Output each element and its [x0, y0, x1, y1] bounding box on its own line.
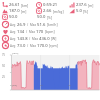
- staticText: 50: [2, 64, 5, 68]
- button[interactable]: Cadence average and maximum: [0, 42, 100, 49]
- staticText: [m]: [88, 3, 94, 8]
- staticText: 237.6: [76, 2, 87, 8]
- button[interactable]: Slope: [69, 8, 100, 14]
- staticText: Max: [30, 44, 36, 48]
- staticText: [%]: [83, 9, 89, 14]
- button[interactable]: Power average and maximum: [0, 35, 100, 42]
- staticText: 50.0: [37, 14, 46, 20]
- staticText: 143.8: [17, 36, 28, 42]
- staticText: 51.6: [37, 22, 46, 28]
- button[interactable]: Heart rate average and maximum: [0, 28, 100, 35]
- button[interactable]: Elevation: [2, 8, 36, 14]
- staticText: /: [27, 23, 29, 27]
- staticText: Avg: [10, 44, 16, 48]
- staticText: [rpm]: [12, 51, 19, 54]
- button[interactable]: Ascent: [69, 2, 100, 8]
- staticText: /: [26, 30, 28, 34]
- staticText: 26.61: [9, 2, 20, 8]
- staticText: 26.9: [17, 22, 26, 28]
- staticText: /: [27, 44, 29, 48]
- staticText: Avg: [10, 23, 16, 27]
- button[interactable]: Duration: [36, 2, 69, 8]
- button[interactable]: Cadence chart: [0, 50, 100, 100]
- staticText: [rpm]: [49, 43, 58, 48]
- staticText: 2.66: [43, 8, 52, 14]
- staticText: 436.0: [39, 36, 50, 42]
- staticText: 170: [36, 29, 44, 35]
- staticText: 134: [17, 29, 25, 35]
- staticText: Avg: [10, 37, 16, 41]
- staticText: [W]: [51, 36, 57, 41]
- staticText: 170.0: [37, 43, 48, 49]
- button[interactable]: Left balance: [2, 14, 36, 20]
- staticText: /: [29, 37, 31, 41]
- staticText: 73.0: [17, 43, 26, 49]
- staticText: 50.0: [9, 14, 18, 20]
- staticText: [km]: [21, 3, 29, 8]
- staticText: 75: [2, 53, 5, 57]
- staticText: 5.0: [76, 8, 82, 14]
- staticText: [bpm]: [45, 29, 55, 34]
- staticText: Max: [32, 37, 38, 41]
- staticText: 0 [km]: [10, 83, 18, 86]
- staticText: [m/kg]: [53, 9, 64, 14]
- button[interactable]: Speed average and maximum: [0, 21, 100, 28]
- button[interactable]: Ratio: [36, 8, 69, 14]
- staticText: 25: [2, 75, 5, 79]
- staticText: 40: [68, 83, 71, 86]
- staticText: [km/h]: [47, 22, 58, 27]
- button[interactable]: Distance: [2, 2, 36, 8]
- button[interactable]: Right balance: [36, 14, 100, 20]
- staticText: [m]: [21, 9, 27, 14]
- staticText: [%]: [47, 15, 53, 20]
- staticText: Avg: [10, 30, 16, 34]
- staticText: 187.0: [9, 8, 20, 14]
- staticText: 0:59:21: [43, 2, 58, 8]
- staticText: Max: [29, 30, 35, 34]
- staticText: 20: [40, 83, 43, 86]
- staticText: Max: [30, 23, 36, 27]
